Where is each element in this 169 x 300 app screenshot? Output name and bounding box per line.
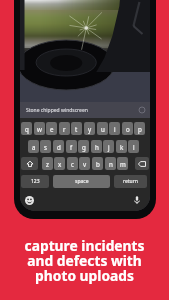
button[interactable]: q [21, 122, 32, 135]
staticText: w [37, 125, 42, 133]
staticText: u [101, 125, 105, 133]
button[interactable]: k [116, 140, 127, 153]
button[interactable]: i [109, 122, 120, 135]
staticText: j [108, 143, 110, 151]
staticText: i [114, 125, 116, 133]
button[interactable]: p [134, 122, 145, 135]
button[interactable]: c [67, 157, 78, 170]
button[interactable]: u [97, 122, 108, 135]
staticText: g [82, 143, 86, 151]
staticText: v [83, 160, 87, 168]
button[interactable]: x [54, 157, 65, 170]
button[interactable]: 123 [21, 175, 49, 188]
button[interactable]: space [53, 175, 110, 188]
staticText: o [126, 125, 130, 133]
staticText: capture incidents and defects with photo… [0, 236, 169, 285]
button[interactable]: l [128, 140, 139, 153]
button[interactable]: f [66, 140, 77, 153]
staticText: return [123, 178, 138, 185]
button[interactable]: h [91, 140, 102, 153]
staticText: a [32, 143, 36, 151]
staticText: s [44, 143, 47, 151]
staticText: l [133, 143, 135, 151]
button[interactable]: Stone chipped windscreen [20, 102, 150, 118]
button[interactable]: Shift [21, 157, 38, 170]
staticText: 123 [31, 178, 40, 185]
staticText: d [57, 143, 61, 151]
button[interactable]: o [122, 122, 133, 135]
staticText: space [75, 178, 89, 185]
staticText: Stone chipped windscreen [26, 107, 88, 114]
staticText: y [88, 125, 92, 133]
button[interactable]: j [103, 140, 114, 153]
staticText: e [50, 125, 54, 133]
staticText: k [120, 143, 124, 151]
staticText: p [138, 125, 142, 133]
button[interactable]: e [46, 122, 57, 135]
staticText: b [96, 160, 100, 168]
button[interactable]: Backspace [135, 157, 149, 170]
button[interactable]: t [71, 122, 82, 135]
button[interactable]: w [34, 122, 45, 135]
staticText: f [70, 143, 73, 151]
button[interactable]: y [84, 122, 95, 135]
button[interactable]: b [92, 157, 103, 170]
button[interactable]: r [59, 122, 70, 135]
staticText: c [71, 160, 74, 168]
button[interactable]: s [40, 140, 51, 153]
staticText: q [25, 125, 29, 133]
staticText: m [120, 160, 126, 168]
button[interactable]: a [28, 140, 39, 153]
staticText: t [75, 125, 78, 133]
staticText: h [95, 143, 99, 151]
staticText: n [109, 160, 113, 168]
button[interactable]: Emoji [25, 196, 34, 205]
button[interactable]: m [117, 157, 128, 170]
button[interactable]: return [114, 175, 147, 188]
button[interactable]: v [79, 157, 90, 170]
staticText: z [46, 160, 49, 168]
button[interactable]: z [42, 157, 53, 170]
button[interactable]: g [78, 140, 89, 153]
staticText: x [58, 160, 62, 168]
button[interactable]: Dictate [132, 195, 142, 205]
button[interactable]: d [53, 140, 64, 153]
staticText: r [63, 125, 66, 133]
button[interactable]: n [105, 157, 116, 170]
